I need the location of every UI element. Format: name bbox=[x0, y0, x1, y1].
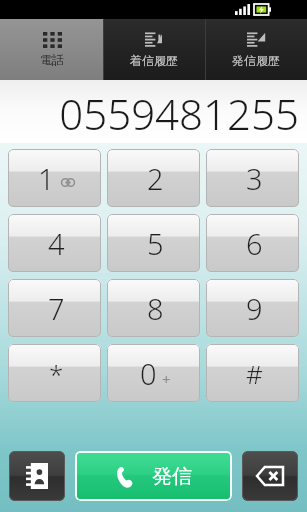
button[interactable]: 7 bbox=[8, 279, 101, 337]
staticText: 0559481255 bbox=[59, 85, 299, 142]
staticText: 1 bbox=[38, 159, 55, 198]
staticText: 電話 bbox=[40, 52, 64, 67]
staticText: + bbox=[162, 369, 171, 389]
button[interactable]: # bbox=[206, 344, 299, 402]
staticText: 8 bbox=[147, 289, 164, 328]
button[interactable]: 0 bbox=[107, 344, 200, 402]
staticText: 発信履歴 bbox=[232, 53, 280, 68]
button[interactable]: Backspace bbox=[242, 451, 298, 501]
button[interactable]: 5 bbox=[107, 214, 200, 272]
staticText: # bbox=[246, 356, 263, 391]
button[interactable]: 発信 bbox=[75, 451, 232, 501]
staticText: 6 bbox=[246, 224, 263, 263]
staticText: * bbox=[49, 356, 64, 391]
staticText: 発信 bbox=[152, 464, 192, 489]
button[interactable]: 4 bbox=[8, 214, 101, 272]
button[interactable]: 1 bbox=[8, 149, 101, 207]
button[interactable]: 8 bbox=[107, 279, 200, 337]
button[interactable]: 発信履歴 bbox=[205, 19, 307, 80]
staticText: 7 bbox=[48, 289, 65, 328]
staticText: 着信履歴 bbox=[130, 53, 178, 68]
staticText: 0 bbox=[140, 354, 157, 393]
staticText: 9 bbox=[246, 289, 263, 328]
button[interactable]: 0559481255 bbox=[0, 80, 307, 143]
staticText: 5 bbox=[147, 224, 164, 263]
button[interactable]: 6 bbox=[206, 214, 299, 272]
staticText: 3 bbox=[246, 159, 263, 198]
button[interactable]: 3 bbox=[206, 149, 299, 207]
staticText: 2 bbox=[147, 159, 164, 198]
button[interactable]: 2 bbox=[107, 149, 200, 207]
button[interactable]: 9 bbox=[206, 279, 299, 337]
button[interactable]: 着信履歴 bbox=[103, 19, 205, 80]
staticText: 4 bbox=[48, 224, 65, 263]
button[interactable]: 電話 bbox=[0, 19, 103, 80]
button[interactable]: Contacts bbox=[9, 451, 65, 501]
button[interactable]: * bbox=[8, 344, 101, 402]
